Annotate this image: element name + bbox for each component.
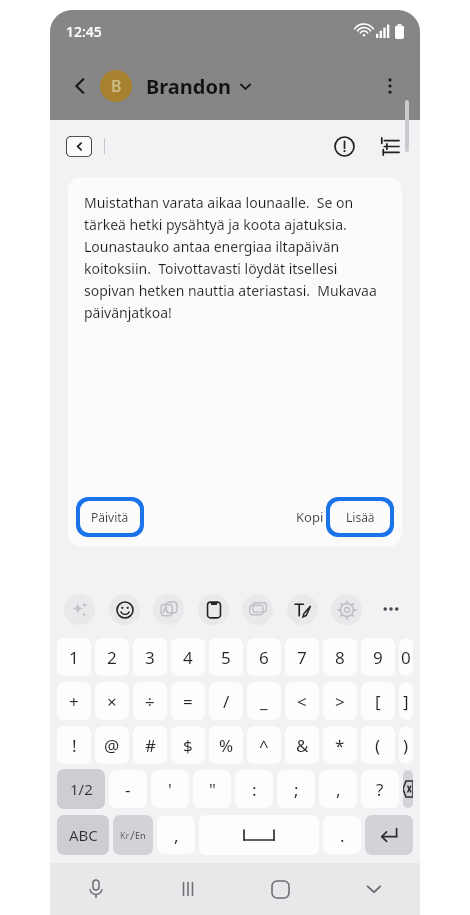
staticText: En [135, 829, 146, 841]
button[interactable]: ABC [57, 815, 109, 855]
button[interactable]: ÷ [133, 682, 167, 720]
staticText: ! [72, 734, 77, 757]
button[interactable]: @ [95, 726, 129, 764]
staticText: × [107, 690, 117, 713]
button[interactable]: Space [199, 815, 319, 855]
button[interactable]: ? [361, 770, 399, 808]
button[interactable]: Language [113, 815, 153, 855]
button[interactable]: 2 [95, 638, 129, 676]
button[interactable]: Lisää [330, 501, 390, 533]
staticText: Lisää [346, 509, 375, 525]
button[interactable]: * [323, 726, 357, 764]
staticText: 2 [107, 646, 117, 669]
button[interactable]: 6 [247, 638, 281, 676]
button[interactable]: : [235, 770, 273, 808]
button[interactable]: Enter [365, 815, 413, 855]
staticText: [ [375, 690, 381, 713]
button[interactable]: ] [399, 682, 413, 720]
button[interactable]: < [285, 682, 319, 720]
staticText: ; [294, 778, 299, 801]
button[interactable]: 1/2 [57, 769, 105, 809]
button[interactable]: 7 [285, 638, 319, 676]
staticText: Kopi [296, 508, 324, 526]
staticText: , [336, 778, 341, 801]
staticText: * [335, 734, 345, 757]
button[interactable]: Muistathan varata aikaa lounaalle. Se on… [68, 177, 402, 547]
button[interactable]: Settings [331, 594, 362, 625]
button[interactable]: More options [372, 68, 408, 104]
button[interactable]: Collapse [66, 136, 92, 157]
button[interactable]: Brandon [144, 69, 254, 104]
button[interactable]: ! [57, 726, 91, 764]
staticText: / [223, 690, 230, 713]
staticText: : [252, 778, 257, 801]
button[interactable]: Back [62, 68, 98, 104]
staticText: B [111, 75, 122, 97]
staticText: " [209, 778, 216, 801]
button[interactable]: Assist [64, 594, 95, 625]
button[interactable]: ( [361, 726, 395, 764]
button[interactable]: 4 [171, 638, 205, 676]
button[interactable]: Settings [372, 130, 404, 162]
button[interactable]: % [209, 726, 243, 764]
button[interactable]: 9 [361, 638, 395, 676]
button[interactable]: Translate [153, 594, 184, 625]
staticText: ] [403, 690, 409, 713]
staticText: ÷ [145, 690, 155, 713]
button[interactable]: - [109, 770, 147, 808]
staticText: - [125, 778, 131, 801]
button[interactable]: Keyboard mode [242, 594, 273, 625]
staticText: 9 [373, 646, 383, 669]
button[interactable]: # [133, 726, 167, 764]
staticText: 12:45 [66, 22, 102, 41]
staticText: 4 [183, 646, 193, 669]
button[interactable]: Päivitä [80, 501, 140, 533]
staticText: ? [376, 778, 384, 801]
button[interactable]: ^ [247, 726, 281, 764]
button[interactable]: 0 [399, 638, 413, 676]
button[interactable]: _ [247, 682, 281, 720]
button[interactable]: ' [151, 770, 189, 808]
button[interactable]: 3 [133, 638, 167, 676]
button[interactable]: , [319, 770, 357, 808]
button[interactable]: Emoji [109, 594, 140, 625]
button[interactable]: ) [399, 726, 413, 764]
button[interactable]: Hide keyboard [327, 863, 420, 915]
button[interactable]: 5 [209, 638, 243, 676]
staticText: ) [403, 734, 409, 757]
button[interactable]: , [157, 816, 195, 854]
button[interactable]: Voice input [50, 863, 142, 915]
staticText: 0 [401, 646, 411, 669]
staticText: # [145, 734, 156, 757]
button[interactable]: ; [277, 770, 315, 808]
button[interactable]: Recents [142, 863, 234, 915]
button[interactable]: Backspace [403, 770, 413, 808]
button[interactable]: & [285, 726, 319, 764]
button[interactable]: [ [361, 682, 395, 720]
button[interactable]: × [95, 682, 129, 720]
button[interactable]: > [323, 682, 357, 720]
button[interactable]: 8 [323, 638, 357, 676]
button[interactable]: = [171, 682, 205, 720]
button[interactable]: . [323, 816, 361, 854]
button[interactable]: / [209, 682, 243, 720]
button[interactable]: Home [234, 863, 327, 915]
staticText: , [174, 824, 179, 847]
staticText: 6 [259, 646, 269, 669]
button[interactable]: 1 [57, 638, 91, 676]
staticText: Kr [120, 829, 130, 841]
button[interactable]: + [57, 682, 91, 720]
staticText: Brandon [146, 73, 231, 100]
button[interactable]: More [376, 594, 406, 624]
button[interactable]: $ [171, 726, 205, 764]
button[interactable]: " [193, 770, 231, 808]
button[interactable]: Clipboard [198, 594, 229, 625]
button[interactable]: Handwriting [287, 594, 318, 625]
staticText: & [296, 734, 309, 757]
staticText: ^ [259, 734, 269, 757]
staticText: ' [168, 778, 172, 801]
button[interactable]: Information [328, 130, 360, 162]
staticText: @ [104, 734, 120, 757]
staticText: $ [183, 734, 193, 757]
staticText: 1 [69, 646, 79, 669]
